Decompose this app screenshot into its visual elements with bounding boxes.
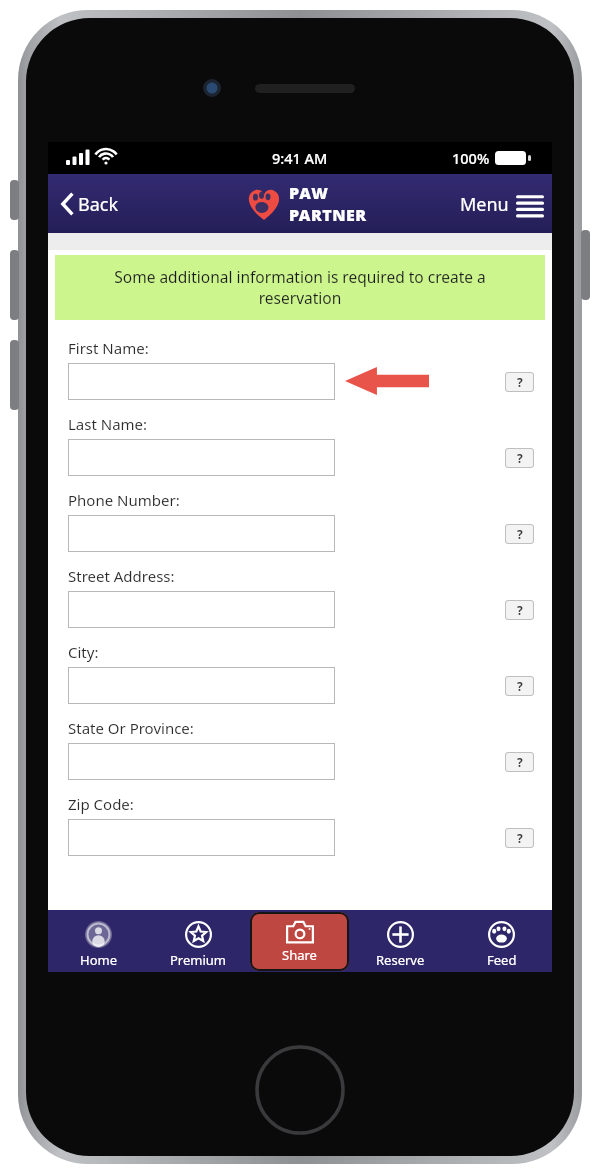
staticText: ? — [517, 754, 523, 770]
other: Menu — [516, 191, 544, 217]
staticText: Phone Number: — [68, 490, 180, 510]
staticText: ? — [517, 374, 523, 390]
button[interactable] — [68, 439, 335, 476]
staticText: Reserve — [376, 951, 425, 969]
staticText: Premium — [170, 951, 227, 969]
staticText: Home — [80, 951, 117, 969]
staticText: Zip Code: — [68, 794, 134, 814]
staticText: ? — [517, 450, 523, 466]
staticText: PAW — [289, 182, 329, 204]
button[interactable] — [68, 515, 335, 552]
staticText: 9:41 AM — [272, 148, 328, 168]
staticText: PARTNER — [289, 204, 367, 226]
button[interactable]: Help — [505, 676, 534, 696]
staticText: ? — [517, 526, 523, 542]
staticText: Menu — [460, 192, 509, 217]
button[interactable]: Feed — [451, 914, 552, 969]
button[interactable]: Help — [505, 752, 534, 772]
staticText: Some additional information is required … — [97, 266, 503, 309]
staticText: State Or Province: — [68, 718, 194, 738]
staticText: ? — [517, 830, 523, 846]
button[interactable]: Help — [505, 828, 534, 848]
button[interactable] — [68, 363, 335, 400]
button[interactable]: Reserve — [350, 914, 451, 969]
staticText: 100% — [452, 148, 490, 168]
button[interactable] — [68, 591, 335, 628]
button[interactable] — [68, 743, 335, 780]
button[interactable]: Back — [58, 190, 119, 218]
staticText: ? — [517, 602, 523, 618]
staticText: Back — [78, 192, 119, 217]
button[interactable]: Menu — [460, 191, 544, 217]
staticText: First Name: — [68, 338, 149, 358]
button[interactable] — [68, 819, 335, 856]
button[interactable]: Help — [505, 372, 534, 392]
staticText: ? — [517, 678, 523, 694]
button[interactable]: Home — [48, 914, 148, 969]
button[interactable]: Premium — [148, 914, 249, 969]
button[interactable]: Help — [505, 448, 534, 468]
staticText: Share — [282, 946, 317, 964]
staticText: Last Name: — [68, 414, 148, 434]
staticText: Feed — [487, 951, 517, 969]
button[interactable] — [68, 667, 335, 704]
staticText: City: — [68, 642, 99, 662]
button[interactable]: Help — [505, 524, 534, 544]
button[interactable]: Help — [505, 600, 534, 620]
staticText: Street Address: — [68, 566, 175, 586]
button[interactable]: Share — [250, 912, 349, 971]
